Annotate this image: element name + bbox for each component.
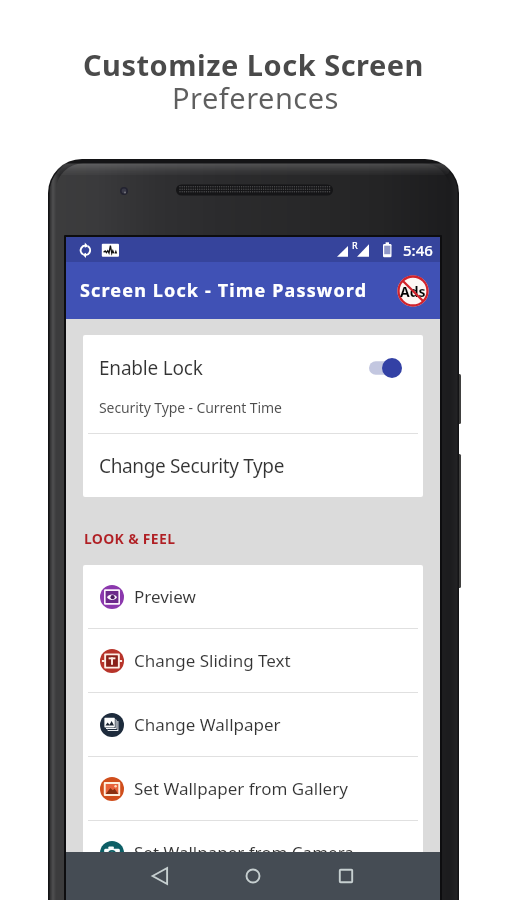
staticText: Change Security Type — [99, 453, 285, 479]
button[interactable]: Change Wallpaper — [83, 693, 423, 756]
staticText: Security Type - Current Time — [99, 398, 282, 417]
button[interactable]: Back — [140, 856, 180, 896]
staticText: Set Wallpaper from Gallery — [134, 777, 348, 800]
staticText: R — [352, 239, 358, 251]
button[interactable]: Home — [233, 856, 273, 896]
button[interactable]: Enable Lock — [83, 335, 423, 433]
staticText: Customize Lock Screen — [83, 45, 424, 84]
button[interactable]: Set Wallpaper from Gallery — [83, 757, 423, 820]
button[interactable]: Change Sliding Text — [83, 629, 423, 692]
button[interactable]: Recent apps — [326, 856, 366, 896]
button[interactable]: Change Security Type — [83, 434, 423, 497]
staticText: 5:46 — [403, 240, 433, 260]
staticText: Enable Lock — [99, 355, 369, 381]
staticText: Change Wallpaper — [134, 713, 281, 736]
button[interactable]: Set Wallpaper from Camera — [83, 821, 423, 884]
button[interactable]: Preview — [83, 565, 423, 628]
staticText: Preview — [134, 585, 196, 608]
staticText: Change Sliding Text — [134, 649, 291, 672]
staticText: Screen Lock - Time Password — [80, 278, 368, 303]
staticText: Ads — [400, 282, 426, 301]
staticText: Set Wallpaper from Camera — [134, 841, 354, 864]
staticText: LOOK & FEEL — [84, 529, 176, 548]
staticText: Preferences — [172, 78, 339, 117]
button[interactable]: Remove ads — [396, 274, 430, 308]
